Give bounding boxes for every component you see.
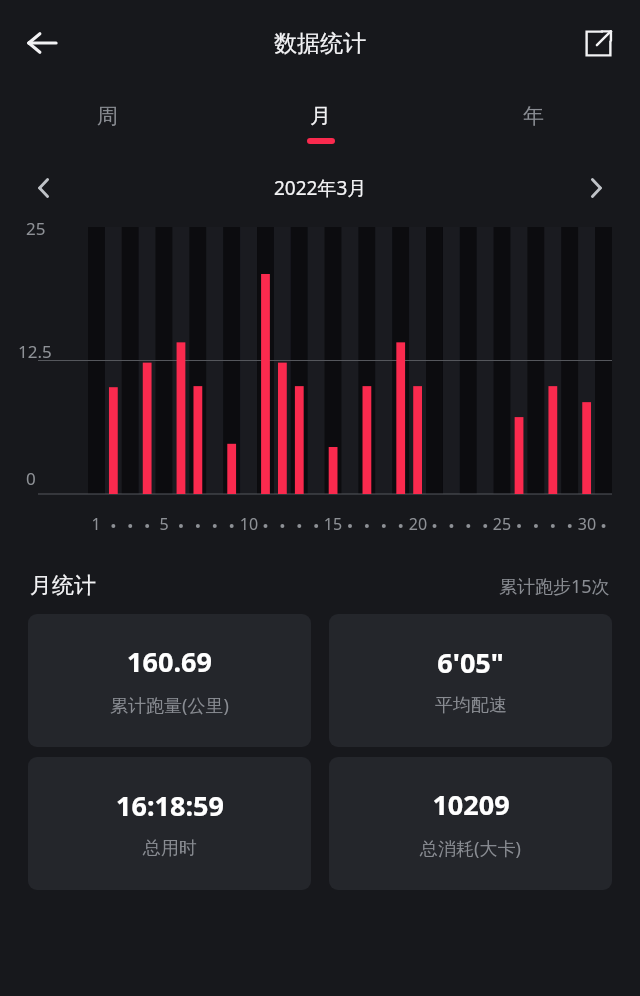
staticText: 5 bbox=[153, 513, 175, 535]
button[interactable]: Back bbox=[14, 15, 70, 71]
button[interactable]: Next month bbox=[574, 166, 618, 210]
button[interactable]: 10209 bbox=[329, 757, 612, 890]
staticText: 1 bbox=[85, 513, 107, 535]
staticText: 6'05" bbox=[437, 644, 504, 681]
button[interactable]: 月 bbox=[214, 86, 427, 160]
staticText: 2022年3月 bbox=[274, 175, 367, 201]
staticText: 16:18:59 bbox=[116, 787, 224, 824]
staticText: 12.5 bbox=[18, 340, 52, 363]
button[interactable]: Share bbox=[570, 15, 626, 71]
staticText: 总用时 bbox=[143, 837, 197, 860]
staticText: 周 bbox=[97, 103, 118, 129]
staticText: 总消耗(大卡) bbox=[420, 836, 521, 861]
button[interactable]: 6'05" bbox=[329, 614, 612, 747]
button[interactable]: 16:18:59 bbox=[28, 757, 311, 890]
staticText: 20 bbox=[407, 513, 429, 535]
staticText: 数据统计 bbox=[274, 29, 366, 58]
staticText: 10 bbox=[238, 513, 260, 535]
button[interactable]: 周 bbox=[0, 86, 214, 160]
staticText: 累计跑量(公里) bbox=[110, 693, 229, 718]
staticText: 0 bbox=[26, 467, 36, 490]
staticText: 15 bbox=[322, 513, 344, 535]
button[interactable]: 年 bbox=[427, 86, 640, 160]
staticText: 30 bbox=[576, 513, 598, 535]
button[interactable]: 160.69 bbox=[28, 614, 311, 747]
staticText: 月 bbox=[310, 103, 331, 129]
staticText: 25 bbox=[26, 217, 46, 240]
button[interactable]: Previous month bbox=[22, 166, 66, 210]
staticText: 25 bbox=[491, 513, 513, 535]
staticText: 10209 bbox=[432, 786, 510, 823]
staticText: 160.69 bbox=[127, 643, 212, 680]
staticText: 平均配速 bbox=[435, 694, 507, 717]
staticText: 累计跑步15次 bbox=[499, 574, 610, 599]
staticText: 月统计 bbox=[30, 572, 96, 600]
staticText: 年 bbox=[523, 103, 544, 129]
